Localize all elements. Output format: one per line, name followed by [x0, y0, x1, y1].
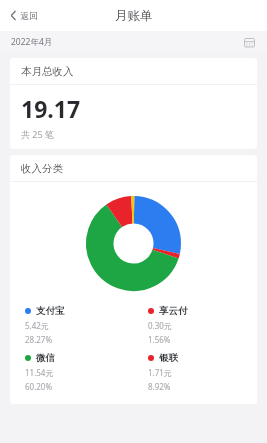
staticText: 0.30元 [148, 320, 172, 331]
button[interactable]: 返回 [0, 4, 48, 27]
staticText: 28.27% [25, 334, 53, 345]
staticText: 银联 [159, 352, 178, 364]
staticText: 返回 [20, 10, 38, 21]
staticText: 19.17 [21, 93, 81, 124]
staticText: 5.42元 [25, 320, 49, 331]
staticText: 11.54元 [25, 367, 54, 378]
staticText: 1.56% [148, 334, 171, 345]
staticText: 微信 [36, 352, 55, 364]
staticText: 共 25 笔 [21, 128, 54, 140]
staticText: 月账单 [115, 8, 153, 24]
staticText: 本月总收入 [21, 65, 74, 78]
staticText: 支付宝 [36, 305, 65, 317]
staticText: 8.92% [148, 381, 171, 392]
button[interactable]: Select month [242, 35, 256, 49]
button[interactable]: 2022年4月 [0, 31, 267, 52]
staticText: 60.20% [25, 381, 53, 392]
button[interactable]: 微信 [10, 352, 133, 392]
staticText: 收入分类 [21, 162, 63, 175]
button[interactable]: 享云付 [133, 305, 257, 345]
button[interactable]: 银联 [133, 352, 257, 392]
staticText: 2022年4月 [11, 36, 53, 48]
staticText: 享云付 [159, 305, 188, 317]
staticText: 1.71元 [148, 367, 172, 378]
button[interactable]: 支付宝 [10, 305, 133, 345]
